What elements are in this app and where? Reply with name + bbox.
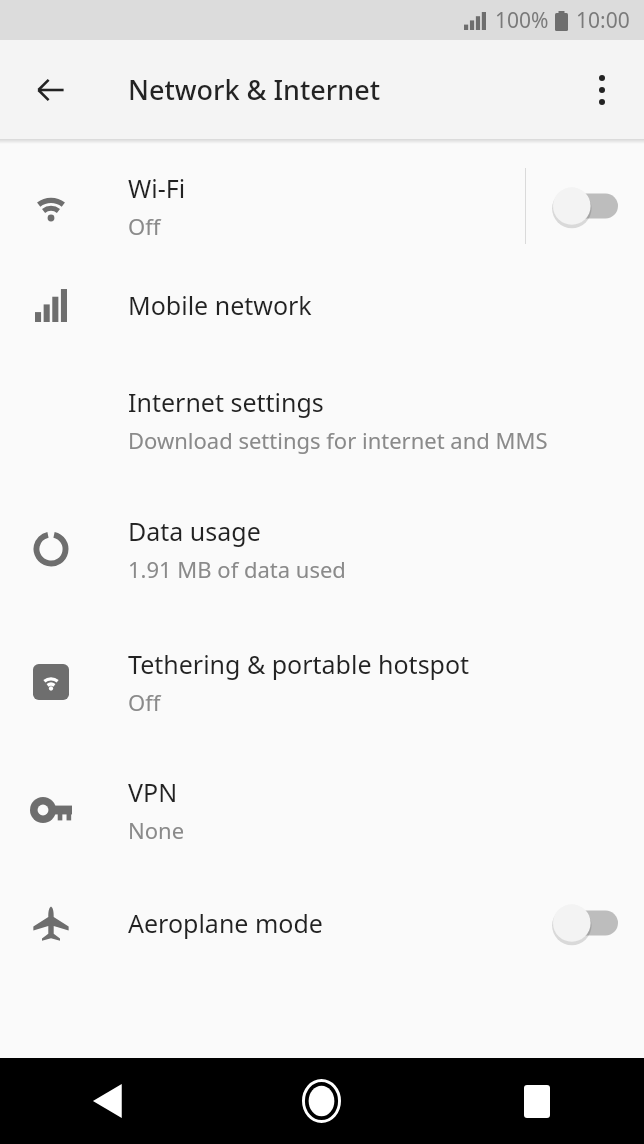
button[interactable]: Back bbox=[15, 54, 87, 126]
staticText: Off bbox=[128, 687, 161, 717]
button[interactable]: Home bbox=[214, 1058, 429, 1144]
staticText: Aeroplane mode bbox=[128, 906, 323, 940]
button[interactable]: Toggle bbox=[526, 880, 644, 966]
staticText: Network & Internet bbox=[128, 71, 381, 108]
staticText: Internet settings bbox=[128, 385, 324, 419]
button[interactable]: Mobile network bbox=[0, 251, 644, 359]
button[interactable]: More options bbox=[569, 57, 635, 123]
staticText: Mobile network bbox=[128, 288, 312, 322]
button[interactable]: Toggle bbox=[526, 163, 644, 249]
button[interactable]: Tethering & portable hotspot bbox=[0, 616, 644, 747]
button[interactable]: Internet settings bbox=[0, 359, 644, 481]
button[interactable]: Back bbox=[0, 1058, 214, 1144]
button[interactable]: Recent apps bbox=[429, 1058, 644, 1144]
staticText: Download settings for internet and MMS bbox=[128, 425, 548, 455]
staticText: VPN bbox=[128, 775, 178, 809]
staticText: None bbox=[128, 815, 185, 845]
staticText: Off bbox=[128, 211, 161, 241]
button[interactable]: VPN bbox=[0, 747, 644, 873]
button[interactable]: Data usage bbox=[0, 481, 644, 616]
staticText: 100% bbox=[495, 6, 549, 35]
staticText: 1.91 MB of data used bbox=[128, 554, 346, 584]
staticText: Wi-Fi bbox=[128, 171, 186, 205]
button[interactable]: Aeroplane mode bbox=[0, 873, 644, 973]
staticText: Data usage bbox=[128, 514, 261, 548]
staticText: 10:00 bbox=[576, 6, 630, 35]
staticText: Tethering & portable hotspot bbox=[128, 647, 470, 681]
button[interactable]: Wi-Fi bbox=[0, 144, 644, 251]
